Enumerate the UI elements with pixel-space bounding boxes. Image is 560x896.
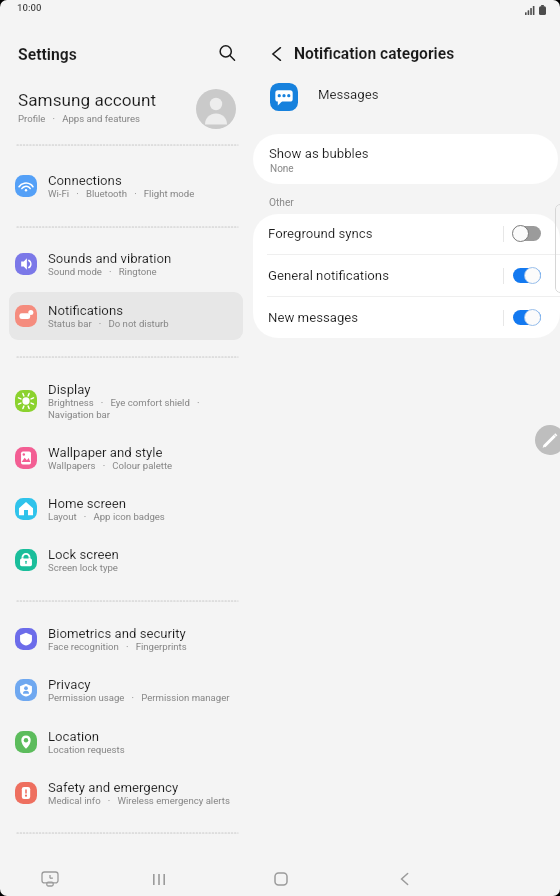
staticText: Screen lock type (48, 562, 118, 573)
button[interactable]: New messages (253, 297, 560, 338)
staticText: Display (48, 382, 91, 397)
button[interactable]: Location (9, 718, 243, 766)
button[interactable]: Biometrics and security (9, 615, 243, 663)
button[interactable]: Search (213, 39, 241, 67)
staticText: Settings (18, 45, 77, 63)
staticText: Notification categories (294, 45, 455, 63)
staticText: Permission usage · Permission manager (48, 692, 230, 703)
staticText: Other (269, 197, 294, 209)
staticText: Wi-Fi · Bluetooth · Flight mode (48, 188, 195, 199)
button[interactable]: Back (262, 40, 290, 68)
button[interactable]: Connections (9, 162, 243, 210)
button[interactable]: Home (261, 859, 301, 896)
button[interactable]: Wallpaper and style (9, 434, 243, 482)
staticText: General notifications (268, 268, 389, 283)
staticText: New messages (268, 310, 359, 325)
button[interactable]: Menu (139, 859, 179, 896)
button[interactable]: Foreground syncs (253, 213, 560, 254)
staticText: Privacy (48, 677, 91, 692)
staticText: Messages (318, 87, 379, 102)
staticText: Show as bubbles (269, 146, 369, 161)
staticText: Safety and emergency (48, 780, 179, 795)
staticText: Foreground syncs (268, 226, 373, 241)
staticText: None (270, 163, 294, 175)
button[interactable]: Sounds and vibration (9, 240, 243, 288)
button[interactable]: Recents (30, 859, 70, 896)
button[interactable]: Lock screen (9, 536, 243, 584)
staticText: Status bar · Do not disturb (48, 318, 169, 329)
staticText: Location requests (48, 744, 125, 755)
staticText: Connections (48, 173, 122, 188)
staticText: Wallpaper and style (48, 445, 163, 460)
staticText: Brightness · Eye comfort shield · Naviga… (48, 397, 200, 420)
button[interactable]: Home screen (9, 485, 243, 533)
button[interactable]: Safety and emergency (9, 769, 243, 817)
staticText: Profile · Apps and features (18, 113, 141, 124)
staticText: Sound mode · Ringtone (48, 266, 157, 277)
staticText: Wallpapers · Colour palette (48, 460, 173, 471)
staticText: Face recognition · Fingerprints (48, 641, 187, 652)
staticText: Home screen (48, 496, 127, 511)
button[interactable]: General notifications (253, 255, 560, 296)
staticText: Lock screen (48, 547, 119, 562)
staticText: Sounds and vibration (48, 251, 172, 266)
staticText: Notifications (48, 303, 123, 318)
button[interactable]: Back (384, 859, 424, 896)
staticText: Samsung account (18, 90, 157, 110)
button[interactable]: Show as bubbles (253, 134, 558, 184)
button[interactable]: Notifications (9, 292, 243, 340)
staticText: Layout · App icon badges (48, 511, 165, 522)
staticText: Location (48, 729, 100, 744)
button[interactable]: Display (9, 373, 243, 429)
button[interactable]: Samsung account (0, 84, 252, 134)
staticText: Medical info · Wireless emergency alerts (48, 795, 230, 806)
button[interactable]: Edit (535, 425, 560, 455)
button[interactable]: Privacy (9, 666, 243, 714)
button[interactable]: Messages (253, 75, 560, 113)
staticText: 10:00 (17, 2, 42, 13)
staticText: Biometrics and security (48, 626, 186, 641)
